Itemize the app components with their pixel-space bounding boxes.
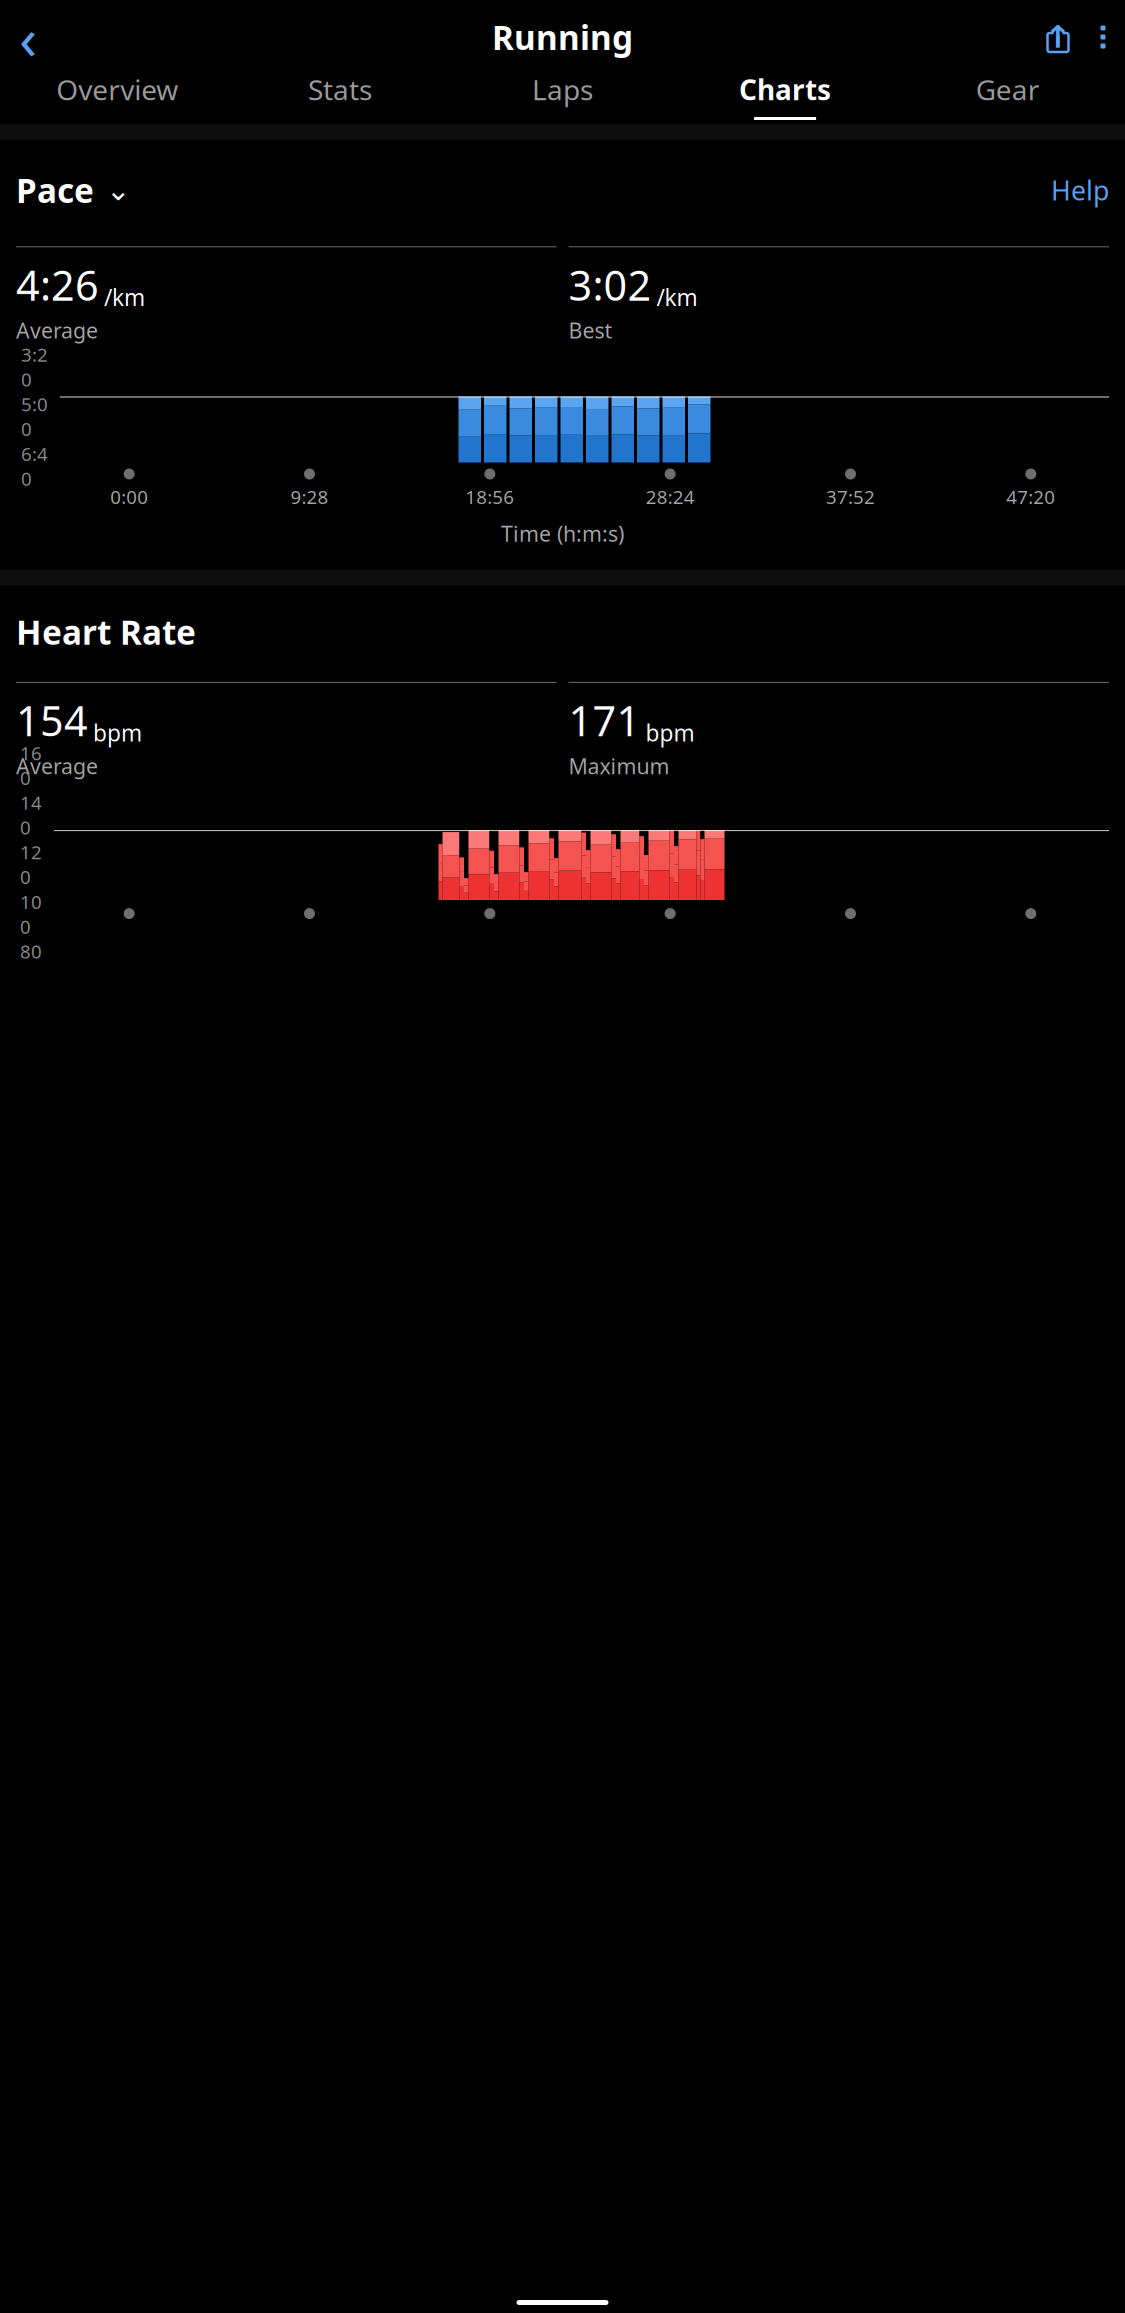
staticText: /km: [656, 282, 697, 312]
button[interactable]: Charts: [674, 62, 896, 124]
staticText: 171: [568, 693, 640, 748]
button[interactable]: Stats: [229, 62, 451, 124]
staticText: Gear: [976, 71, 1040, 108]
staticText: Help: [1051, 172, 1109, 208]
staticText: 160: [20, 740, 42, 790]
staticText: bpm: [645, 718, 694, 748]
staticText: Running: [492, 15, 633, 59]
button[interactable]: Back: [0, 12, 56, 62]
staticText: 3:02: [568, 257, 651, 312]
staticText: Average: [16, 752, 98, 780]
staticText: 6:40: [21, 441, 48, 491]
staticText: Time (h:m:s): [501, 519, 624, 548]
staticText: Maximum: [568, 752, 669, 780]
button[interactable]: Share: [1035, 12, 1081, 62]
button[interactable]: Overview: [6, 62, 229, 124]
staticText: 47:20: [1006, 484, 1055, 509]
staticText: 4:26: [16, 257, 99, 312]
staticText: 5:00: [21, 392, 48, 441]
staticText: 0:00: [110, 484, 148, 509]
staticText: ⌄: [106, 173, 131, 207]
staticText: 154: [16, 693, 88, 748]
staticText: 18:56: [465, 484, 514, 509]
staticText: ‹: [19, 0, 37, 76]
staticText: 140: [20, 790, 42, 840]
staticText: 80: [20, 939, 42, 964]
staticText: Best: [568, 316, 612, 344]
staticText: Stats: [308, 71, 372, 108]
staticText: ↑: [1045, 20, 1071, 54]
button[interactable]: Laps: [451, 62, 674, 124]
staticText: ↑: [1045, 20, 1071, 54]
button[interactable]: More options: [1081, 12, 1125, 62]
staticText: Laps: [532, 71, 593, 108]
staticText: 100: [20, 889, 42, 939]
staticText: /km: [104, 282, 145, 312]
staticText: 120: [20, 840, 42, 889]
staticText: Charts: [739, 71, 831, 108]
staticText: 3:20: [21, 342, 48, 392]
staticText: bpm: [93, 718, 142, 748]
staticText: 37:52: [826, 484, 875, 509]
staticText: 28:24: [646, 484, 695, 509]
staticText: 9:28: [290, 484, 328, 509]
button[interactable]: Pace: [16, 162, 131, 218]
staticText: Average: [16, 316, 98, 344]
staticText: Overview: [56, 71, 178, 108]
staticText: Pace: [16, 168, 94, 212]
staticText: Heart Rate: [16, 610, 196, 654]
button[interactable]: Gear: [896, 62, 1119, 124]
button[interactable]: Help: [1051, 166, 1109, 214]
